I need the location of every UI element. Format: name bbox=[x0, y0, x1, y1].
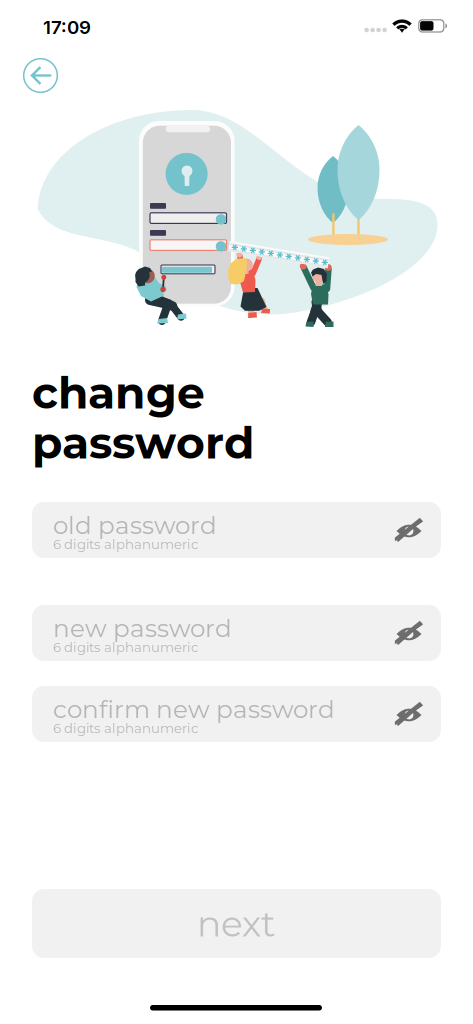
staticText: old password bbox=[53, 510, 217, 540]
staticText: password bbox=[32, 416, 254, 470]
staticText: confirm new password bbox=[53, 694, 335, 724]
staticText: new password bbox=[53, 613, 232, 643]
staticText: 6 digits alphanumeric bbox=[53, 536, 199, 552]
button[interactable]: new password bbox=[32, 605, 441, 661]
button[interactable]: next bbox=[32, 889, 441, 958]
staticText: 17:09 bbox=[43, 16, 91, 39]
button[interactable]: Back bbox=[23, 58, 58, 93]
staticText: change bbox=[32, 366, 205, 420]
staticText: next bbox=[197, 902, 276, 945]
staticText: 6 digits alphanumeric bbox=[53, 639, 199, 655]
button[interactable]: confirm new password bbox=[32, 686, 441, 742]
button[interactable]: old password bbox=[32, 502, 441, 558]
staticText: 6 digits alphanumeric bbox=[53, 720, 199, 736]
